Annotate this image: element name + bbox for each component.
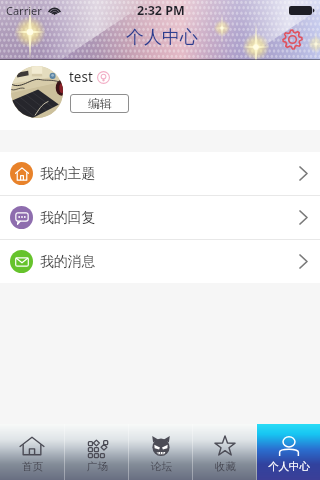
staticText: 我的回复 <box>40 209 96 226</box>
button[interactable]: 我的回复 <box>0 196 320 239</box>
staticText: Carrier <box>6 3 42 18</box>
button[interactable]: 我的消息 <box>0 240 320 283</box>
staticText: 编辑 <box>88 96 112 111</box>
staticText: 我的消息 <box>40 253 96 270</box>
staticText: 2:32 PM <box>137 2 185 19</box>
staticText: 收藏 <box>215 460 236 473</box>
button[interactable]: 我的主题 <box>0 152 320 195</box>
staticText: 广场 <box>87 460 108 473</box>
button[interactable]: 收藏 <box>193 424 256 480</box>
button[interactable]: Settings <box>279 26 305 52</box>
staticText: 个人中心 <box>126 26 198 49</box>
button[interactable]: 首页 <box>0 424 64 480</box>
staticText: test <box>69 68 93 86</box>
staticText: 我的主题 <box>40 165 96 182</box>
button[interactable]: 个人中心 <box>257 424 320 480</box>
staticText: 论坛 <box>151 460 172 473</box>
staticText: 个人中心 <box>268 460 310 473</box>
button[interactable]: 编辑 <box>70 94 129 113</box>
staticText: 首页 <box>22 460 43 473</box>
button[interactable]: 广场 <box>65 424 128 480</box>
button[interactable]: 论坛 <box>129 424 192 480</box>
